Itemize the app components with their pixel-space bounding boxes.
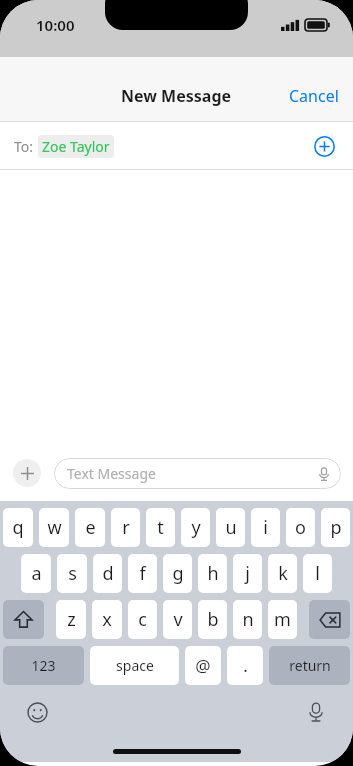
- staticText: n: [242, 607, 254, 632]
- button[interactable]: o: [286, 508, 315, 547]
- staticText: h: [207, 561, 219, 586]
- button[interactable]: p: [321, 508, 350, 547]
- staticText: Text Message: [67, 464, 156, 483]
- button[interactable]: k: [268, 554, 297, 593]
- staticText: .: [243, 654, 248, 677]
- button[interactable]: Add contact: [309, 131, 339, 161]
- button[interactable]: Cancel: [275, 77, 353, 115]
- staticText: 10:00: [36, 15, 75, 35]
- button[interactable]: Dictation: [303, 699, 329, 725]
- staticText: d: [102, 561, 114, 586]
- button[interactable]: b: [198, 600, 227, 639]
- button[interactable]: x: [92, 600, 122, 639]
- button[interactable]: z: [56, 600, 86, 639]
- button[interactable]: d: [93, 554, 122, 593]
- staticText: j: [245, 561, 250, 586]
- other: Dictate: [317, 467, 331, 481]
- staticText: New Message: [121, 85, 232, 107]
- staticText: p: [330, 515, 342, 540]
- button[interactable]: n: [233, 600, 262, 639]
- staticText: i: [263, 515, 268, 540]
- button[interactable]: q: [3, 508, 33, 547]
- button[interactable]: i: [251, 508, 280, 547]
- staticText: q: [12, 515, 24, 540]
- staticText: a: [31, 561, 42, 586]
- button[interactable]: Shift: [3, 600, 44, 639]
- button[interactable]: Emoji: [24, 699, 50, 725]
- button[interactable]: @: [185, 646, 221, 685]
- button[interactable]: 123: [3, 646, 84, 685]
- staticText: space: [116, 656, 154, 675]
- button[interactable]: f: [128, 554, 157, 593]
- button[interactable]: Text Message: [54, 458, 341, 489]
- button[interactable]: r: [111, 508, 140, 547]
- button[interactable]: l: [303, 554, 332, 593]
- button[interactable]: w: [39, 508, 69, 547]
- staticText: w: [47, 515, 62, 540]
- button[interactable]: Add attachment: [13, 459, 41, 487]
- button[interactable]: return: [269, 646, 350, 685]
- staticText: 123: [31, 656, 56, 675]
- staticText: t: [157, 515, 164, 540]
- button[interactable]: e: [75, 508, 105, 547]
- staticText: y: [191, 515, 201, 540]
- staticText: @: [195, 654, 211, 677]
- staticText: u: [225, 515, 237, 540]
- button[interactable]: j: [233, 554, 262, 593]
- staticText: k: [278, 561, 288, 586]
- staticText: l: [315, 561, 320, 586]
- staticText: x: [102, 607, 112, 632]
- button[interactable]: Zoe Taylor: [38, 135, 114, 158]
- staticText: Zoe Taylor: [42, 137, 110, 156]
- button[interactable]: h: [198, 554, 227, 593]
- button[interactable]: t: [146, 508, 175, 547]
- button[interactable]: v: [163, 600, 192, 639]
- staticText: f: [139, 561, 146, 586]
- button[interactable]: y: [181, 508, 210, 547]
- staticText: b: [207, 607, 219, 632]
- staticText: To:: [14, 137, 34, 156]
- staticText: return: [289, 656, 331, 675]
- staticText: o: [295, 515, 306, 540]
- staticText: z: [67, 607, 76, 632]
- button[interactable]: u: [216, 508, 245, 547]
- button[interactable]: s: [57, 554, 87, 593]
- button[interactable]: c: [128, 600, 157, 639]
- button[interactable]: space: [90, 646, 179, 685]
- button[interactable]: .: [227, 646, 263, 685]
- button[interactable]: m: [268, 600, 297, 639]
- staticText: g: [172, 561, 184, 586]
- staticText: m: [274, 607, 291, 632]
- button[interactable]: a: [21, 554, 51, 593]
- staticText: Cancel: [289, 85, 339, 107]
- staticText: v: [173, 607, 183, 632]
- button[interactable]: g: [163, 554, 192, 593]
- button[interactable]: Backspace: [309, 600, 350, 639]
- staticText: e: [85, 515, 96, 540]
- staticText: r: [122, 515, 130, 540]
- staticText: s: [68, 561, 77, 586]
- staticText: c: [138, 607, 147, 632]
